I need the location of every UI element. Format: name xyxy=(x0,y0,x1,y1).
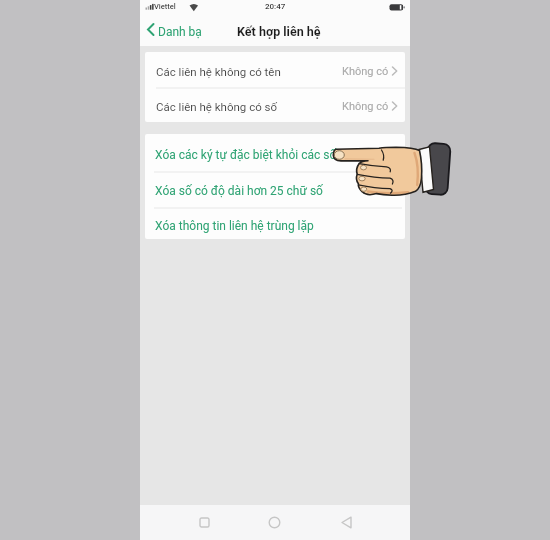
staticText: Xóa các ký tự đặc biệt khỏi các số xyxy=(155,148,337,162)
staticText: Xóa số có độ dài hơn 25 chữ số xyxy=(155,184,323,198)
button[interactable]: Xóa thông tin liên hệ trùng lặp xyxy=(145,208,405,243)
staticText: Danh bạ xyxy=(158,25,202,39)
staticText: Các liên hệ không có tên xyxy=(156,65,281,78)
button[interactable]: Xóa các ký tự đặc biệt khỏi các số xyxy=(145,136,405,173)
staticText: Không có xyxy=(342,65,389,78)
staticText: Viettel xyxy=(154,2,176,11)
button[interactable] xyxy=(254,505,294,540)
button[interactable]: Xóa số có độ dài hơn 25 chữ số xyxy=(145,173,405,209)
button[interactable] xyxy=(184,505,224,540)
button[interactable]: Danh bạ xyxy=(144,17,224,46)
staticText: Kết hợp liên hệ xyxy=(237,24,321,39)
staticText: 20:47 xyxy=(265,2,286,11)
staticText: Không có xyxy=(342,100,389,113)
button[interactable]: Các liên hệ không có số xyxy=(145,89,405,123)
staticText: Các liên hệ không có số xyxy=(156,100,278,113)
button[interactable]: Các liên hệ không có tên xyxy=(145,54,405,88)
staticText: Xóa thông tin liên hệ trùng lặp xyxy=(155,219,314,233)
button[interactable] xyxy=(326,505,366,540)
